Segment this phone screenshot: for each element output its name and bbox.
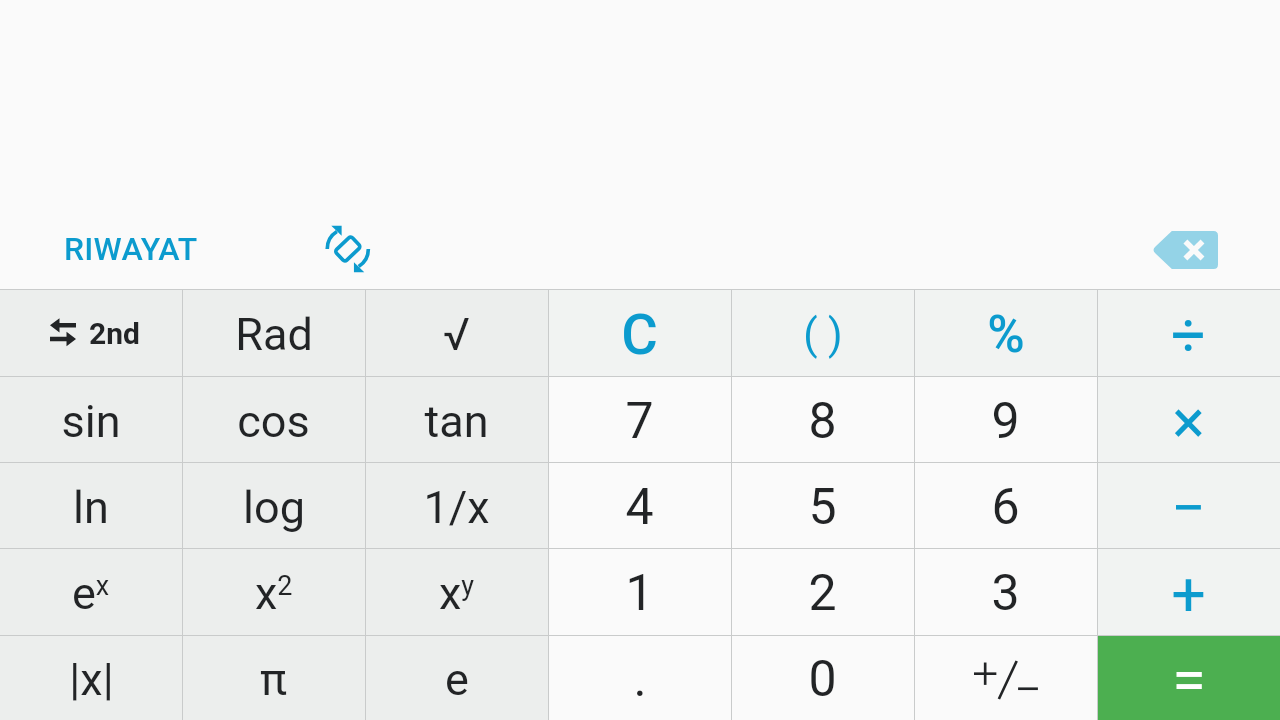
- button[interactable]: x2: [182, 548, 365, 635]
- staticText: log: [243, 481, 305, 534]
- staticText: tan: [424, 395, 489, 448]
- staticText: 8: [808, 392, 837, 451]
- staticText: Rad: [235, 308, 313, 361]
- button[interactable]: |x|: [0, 635, 182, 720]
- staticText: 1/x: [423, 481, 490, 534]
- staticText: 3: [991, 564, 1020, 623]
- button[interactable]: 7: [548, 376, 731, 462]
- button[interactable]: −: [1097, 462, 1280, 548]
- button[interactable]: xy: [365, 548, 548, 635]
- staticText: ÷: [1171, 299, 1206, 370]
- button[interactable]: 2: [731, 548, 914, 635]
- button[interactable]: ( ): [731, 289, 914, 376]
- button[interactable]: 1/x: [365, 462, 548, 548]
- button[interactable]: 6: [914, 462, 1097, 548]
- staticText: √: [443, 308, 470, 361]
- staticText: 1: [625, 564, 654, 623]
- button[interactable]: ln: [0, 462, 182, 548]
- button[interactable]: RIWAYAT: [40, 218, 222, 280]
- button[interactable]: e: [365, 635, 548, 720]
- button[interactable]: %: [914, 289, 1097, 376]
- button[interactable]: ×: [1097, 376, 1280, 462]
- staticText: C: [621, 302, 658, 368]
- button[interactable]: 1: [548, 548, 731, 635]
- button[interactable]: √: [365, 289, 548, 376]
- staticText: ×: [1172, 386, 1205, 457]
- staticText: 9: [991, 392, 1020, 451]
- staticText: .: [633, 650, 647, 709]
- button[interactable]: 9: [914, 376, 1097, 462]
- button[interactable]: +: [1097, 548, 1280, 635]
- staticText: −: [1171, 472, 1206, 543]
- button[interactable]: tan: [365, 376, 548, 462]
- staticText: e: [445, 653, 469, 706]
- staticText: ex: [72, 567, 110, 620]
- staticText: 0: [808, 650, 837, 709]
- button[interactable]: .: [548, 635, 731, 720]
- staticText: π: [260, 653, 287, 706]
- staticText: =: [1172, 644, 1206, 715]
- button[interactable]: Rotate screen: [316, 217, 380, 281]
- staticText: |x|: [69, 653, 114, 706]
- button[interactable]: ÷: [1097, 289, 1280, 376]
- button[interactable]: 8: [731, 376, 914, 462]
- button[interactable]: ex: [0, 548, 182, 635]
- staticText: 6: [991, 478, 1020, 537]
- button[interactable]: 3: [914, 548, 1097, 635]
- staticText: cos: [237, 395, 310, 448]
- staticText: ln: [73, 481, 109, 534]
- staticText: ( ): [803, 310, 843, 359]
- button[interactable]: log: [182, 462, 365, 548]
- button[interactable]: Rad: [182, 289, 365, 376]
- button[interactable]: C: [548, 289, 731, 376]
- staticText: xy: [439, 567, 475, 620]
- button[interactable]: 0: [731, 635, 914, 720]
- staticText: 5: [808, 478, 837, 537]
- staticText: 2nd: [89, 316, 140, 351]
- staticText: +: [1171, 558, 1206, 629]
- button[interactable]: cos: [182, 376, 365, 462]
- button[interactable]: Toggle sign, plus or minus: [914, 635, 1097, 720]
- button[interactable]: 2nd: [0, 289, 182, 376]
- button[interactable]: 5: [731, 462, 914, 548]
- staticText: 4: [625, 478, 654, 537]
- button[interactable]: Backspace: [1139, 213, 1231, 285]
- staticText: x2: [255, 567, 293, 620]
- button[interactable]: =: [1097, 635, 1280, 720]
- button[interactable]: 4: [548, 462, 731, 548]
- staticText: 2: [808, 564, 837, 623]
- staticText: %: [987, 305, 1025, 365]
- staticText: RIWAYAT: [64, 230, 198, 268]
- button[interactable]: π: [182, 635, 365, 720]
- staticText: sin: [61, 395, 121, 448]
- button[interactable]: sin: [0, 376, 182, 462]
- staticText: 7: [625, 392, 654, 451]
